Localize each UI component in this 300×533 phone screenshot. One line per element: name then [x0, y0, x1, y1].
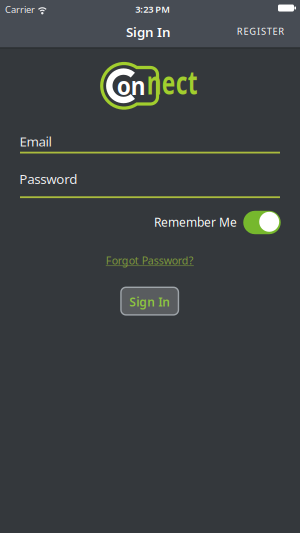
staticText: 3:23 PM [135, 3, 170, 15]
staticText: Email [19, 132, 51, 150]
staticText: nect [147, 67, 198, 97]
staticText: Remember Me [154, 214, 237, 230]
button[interactable]: REGISTER [230, 17, 290, 45]
staticText: on [117, 70, 146, 101]
staticText: REGISTER [237, 25, 284, 37]
staticText: Sign In [129, 294, 170, 310]
staticText: Carrier [5, 3, 35, 15]
staticText: Sign In [126, 23, 171, 41]
button[interactable]: Forgot Password? [85, 249, 215, 271]
staticText: Forgot Password? [106, 253, 194, 267]
button[interactable] [243, 211, 281, 234]
staticText: Password [19, 170, 77, 188]
button[interactable]: Sign In [121, 287, 178, 315]
